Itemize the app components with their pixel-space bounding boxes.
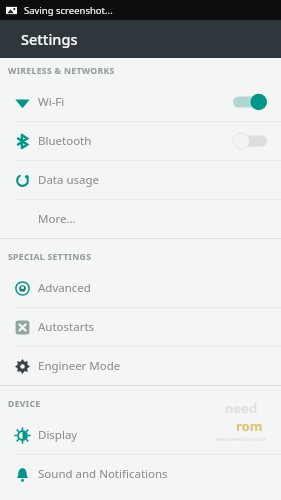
staticText: Display xyxy=(38,427,78,443)
staticText: Autostarts xyxy=(38,319,95,335)
button[interactable]: Sound and Notifications xyxy=(0,455,281,493)
staticText: Sound and Notifications xyxy=(38,466,168,482)
button[interactable]: Bluetooth xyxy=(0,122,281,160)
button[interactable]: More... xyxy=(0,200,281,238)
button[interactable]: Autostarts xyxy=(0,308,281,346)
staticText: need xyxy=(225,399,258,417)
staticText: rom xyxy=(236,417,263,435)
staticText: Data usage xyxy=(38,172,100,188)
staticText: Saving screenshot... xyxy=(24,4,113,17)
staticText: Advanced xyxy=(38,280,91,296)
button[interactable]: Engineer Mode xyxy=(0,347,281,385)
staticText: Settings xyxy=(21,29,78,49)
staticText: www.needrom.com xyxy=(216,435,267,442)
staticText: Engineer Mode xyxy=(38,358,121,374)
staticText: More... xyxy=(38,211,76,227)
staticText: DEVICE xyxy=(8,398,41,410)
button[interactable]: Data usage xyxy=(0,161,281,199)
button[interactable]: Advanced xyxy=(0,269,281,307)
staticText: WIRELESS & NETWORKS xyxy=(8,65,115,77)
staticText: SPECIAL SETTINGS xyxy=(8,251,92,263)
button[interactable]: Settings xyxy=(0,20,281,58)
button[interactable]: Display xyxy=(0,416,281,454)
button[interactable]: Wi-Fi xyxy=(0,83,281,121)
staticText: Bluetooth xyxy=(38,133,92,149)
staticText: Wi-Fi xyxy=(38,94,65,110)
